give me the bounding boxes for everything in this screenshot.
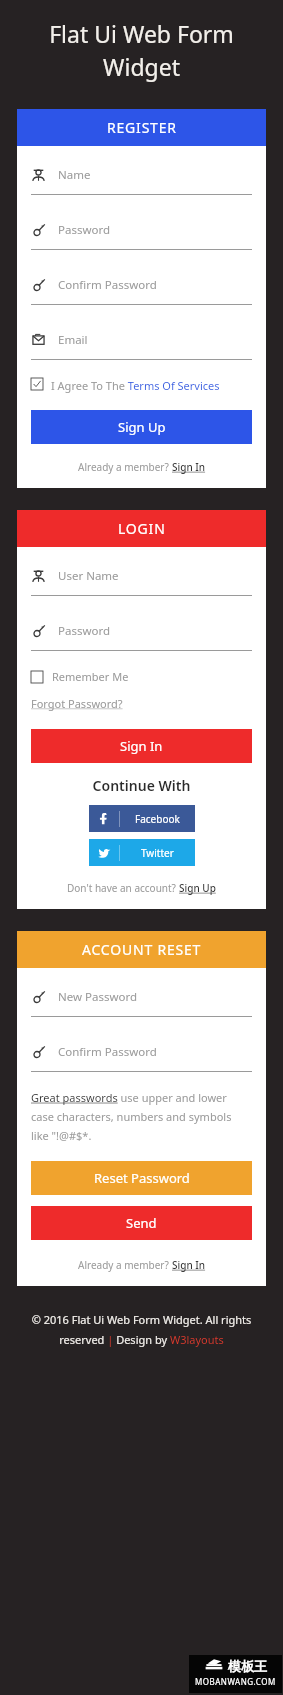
- staticText: User Name: [58, 568, 119, 584]
- staticText: Name: [58, 167, 91, 183]
- button[interactable]: I Agree To The Terms Of Services: [31, 378, 252, 393]
- staticText: Confirm Password: [58, 277, 157, 293]
- button[interactable]: Confirm Password: [31, 1032, 252, 1072]
- button[interactable]: Already a member?: [31, 460, 252, 474]
- staticText: MOBANWANG.COM: [195, 1676, 276, 1687]
- staticText: Facebook: [135, 812, 180, 826]
- button[interactable]: Facebook: [89, 805, 195, 832]
- staticText: Flat Ui Web Form Widget: [24, 18, 259, 83]
- staticText: Send: [126, 1214, 157, 1232]
- button[interactable]: Sign In: [31, 729, 252, 763]
- button[interactable]: Password: [31, 611, 252, 651]
- staticText: New Password: [58, 989, 138, 1005]
- button[interactable]: User Name: [31, 556, 252, 596]
- button[interactable]: Password: [31, 210, 252, 250]
- staticText: Confirm Password: [58, 1044, 157, 1060]
- button[interactable]: Twitter: [89, 839, 195, 866]
- staticText: Sign Up: [118, 418, 166, 436]
- button[interactable]: Confirm Password: [31, 265, 252, 305]
- staticText: Email: [58, 332, 88, 348]
- staticText: LOGIN: [118, 519, 166, 538]
- staticText: Don't have an account?: [67, 881, 176, 895]
- button[interactable]: Forgot Password?: [31, 696, 123, 711]
- staticText: I Agree To The Terms Of Services: [51, 378, 220, 393]
- staticText: Sign In: [120, 737, 163, 755]
- staticText: Forgot Password?: [31, 696, 123, 711]
- button[interactable]: Email: [31, 320, 252, 360]
- staticText: Sign In: [172, 1258, 206, 1272]
- button[interactable]: Sign Up: [31, 410, 252, 444]
- button[interactable]: Don't have an account?: [31, 881, 252, 895]
- staticText: Great passwords use upper and lower case…: [31, 1090, 252, 1143]
- button[interactable]: Send: [31, 1206, 252, 1240]
- button[interactable]: Already a member?: [31, 1258, 252, 1272]
- staticText: Password: [58, 623, 111, 639]
- staticText: Already a member?: [78, 1258, 169, 1272]
- staticText: © 2016 Flat Ui Web Form Widget. All righ…: [22, 1312, 261, 1347]
- button[interactable]: Reset Password: [31, 1161, 252, 1195]
- button[interactable]: Remember Me: [31, 669, 252, 684]
- staticText: 模板王: [228, 1658, 267, 1674]
- staticText: Twitter: [141, 846, 174, 860]
- staticText: Sign Up: [179, 881, 216, 895]
- staticText: Reset Password: [94, 1169, 190, 1187]
- button[interactable]: New Password: [31, 977, 252, 1017]
- staticText: Already a member?: [78, 460, 169, 474]
- button[interactable]: Name: [31, 155, 252, 195]
- staticText: REGISTER: [107, 118, 177, 137]
- staticText: Remember Me: [52, 669, 129, 684]
- staticText: Sign In: [172, 460, 206, 474]
- staticText: ACCOUNT RESET: [82, 940, 202, 959]
- staticText: Continue With: [31, 776, 252, 795]
- staticText: Password: [58, 222, 111, 238]
